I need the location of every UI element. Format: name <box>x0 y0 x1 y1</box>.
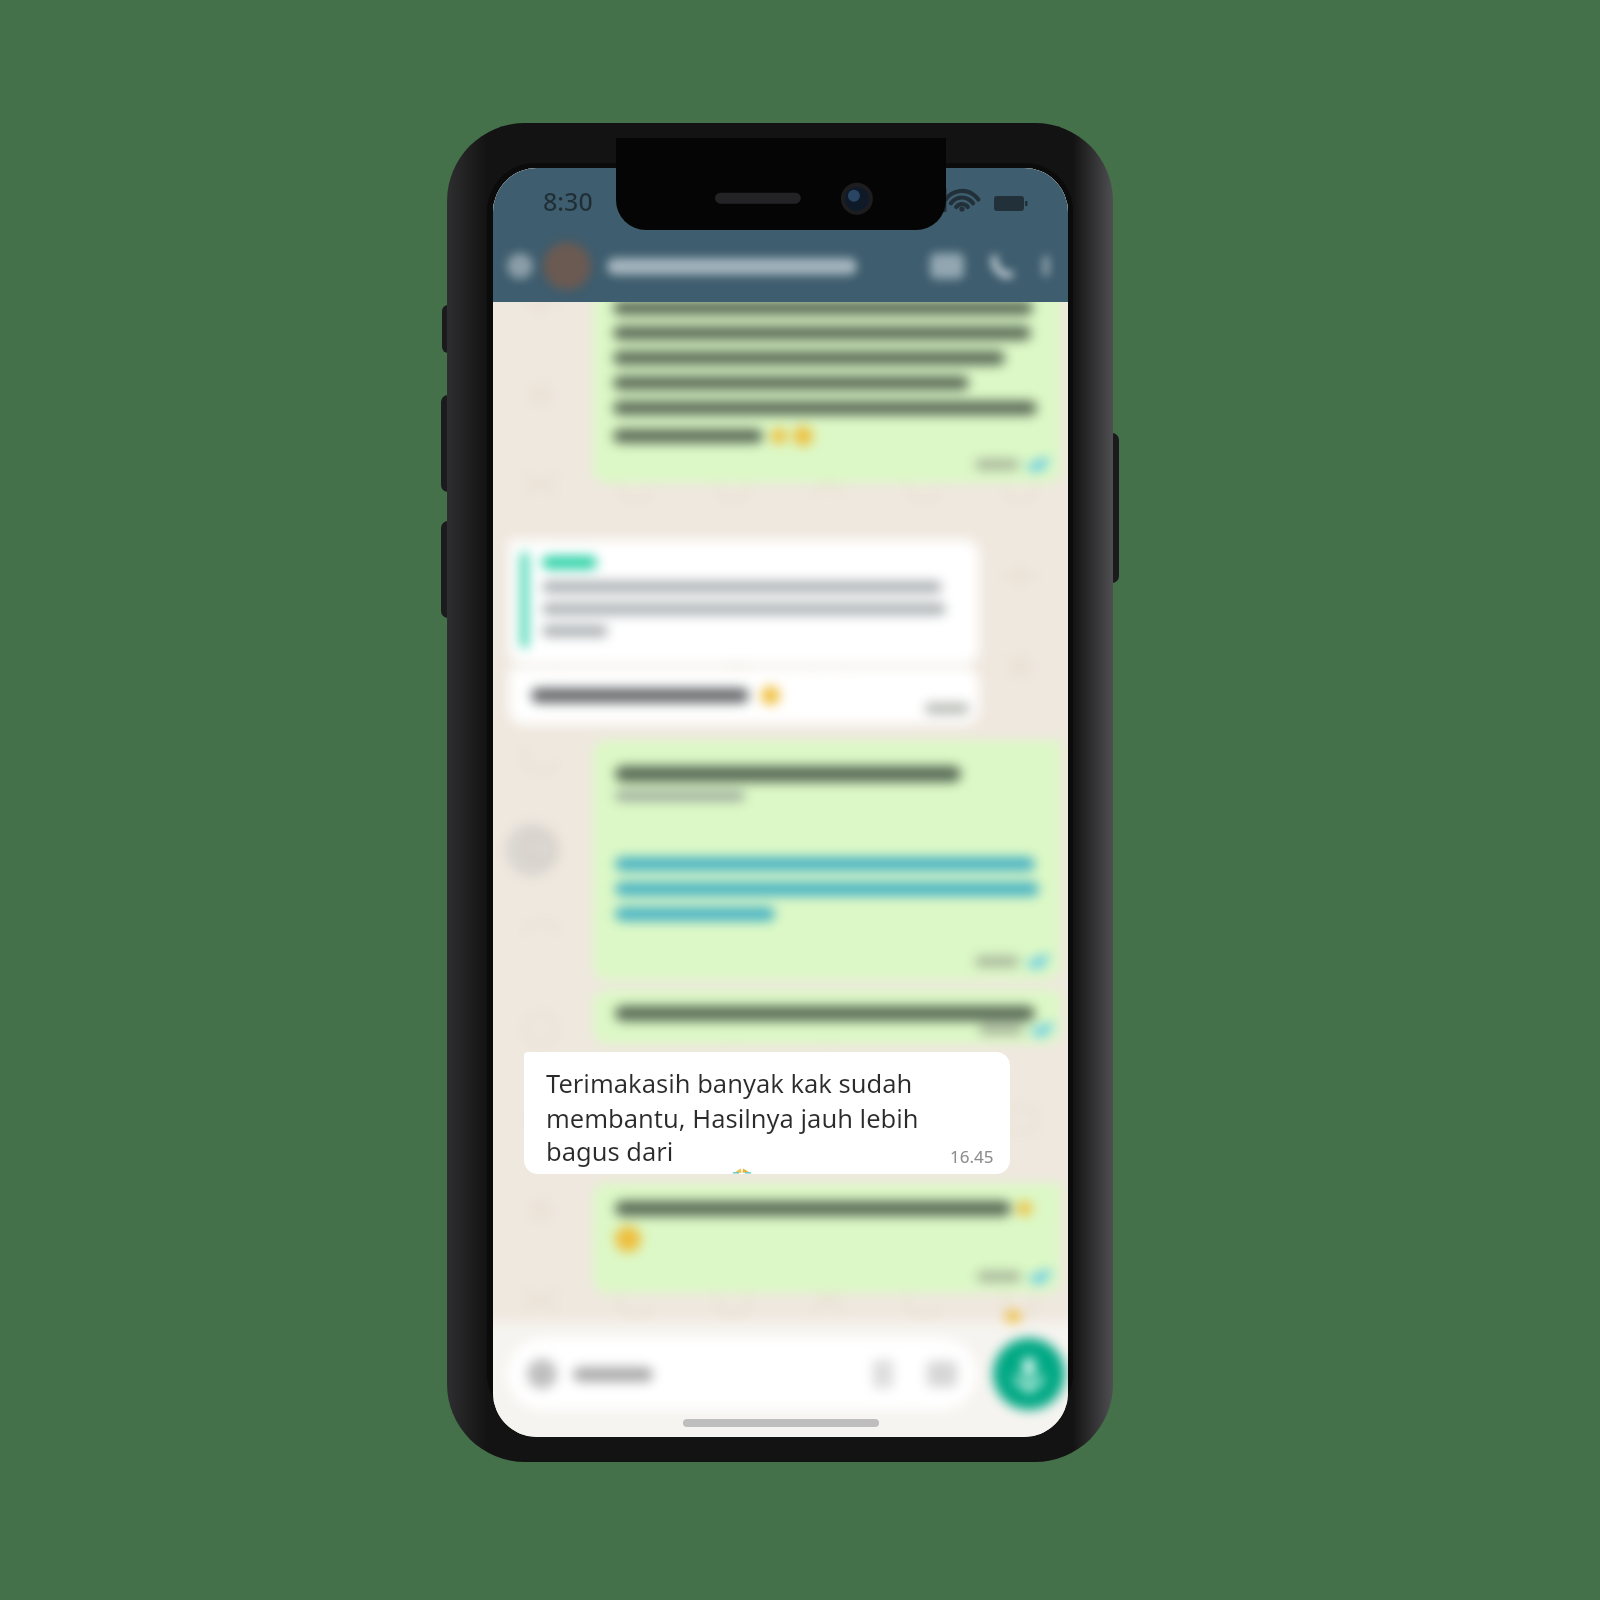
button[interactable]: Terimakasih banyak kak sudah <box>524 1052 1010 1174</box>
staticText: Terimakasih banyak kak sudah <box>546 1066 913 1101</box>
button[interactable] <box>507 1338 977 1410</box>
button[interactable]: Contact avatar <box>543 242 591 290</box>
staticText: membantu, Hasilnya jauh lebih bagus dari <box>546 1101 994 1168</box>
button[interactable]: Voice call <box>990 253 1016 279</box>
staticText: 8:30 <box>543 184 593 218</box>
button[interactable] <box>593 990 1061 1044</box>
button[interactable]: Send voice message <box>993 1338 1065 1410</box>
staticText: 16.45 <box>950 1145 994 1168</box>
button[interactable]: Video call <box>930 253 964 279</box>
button[interactable] <box>593 283 1061 483</box>
button[interactable] <box>593 1183 1061 1293</box>
button[interactable]: Back <box>507 253 533 279</box>
button[interactable]: More options <box>1038 253 1054 279</box>
button[interactable] <box>509 668 979 724</box>
button[interactable] <box>509 540 979 664</box>
button[interactable] <box>593 740 1061 980</box>
